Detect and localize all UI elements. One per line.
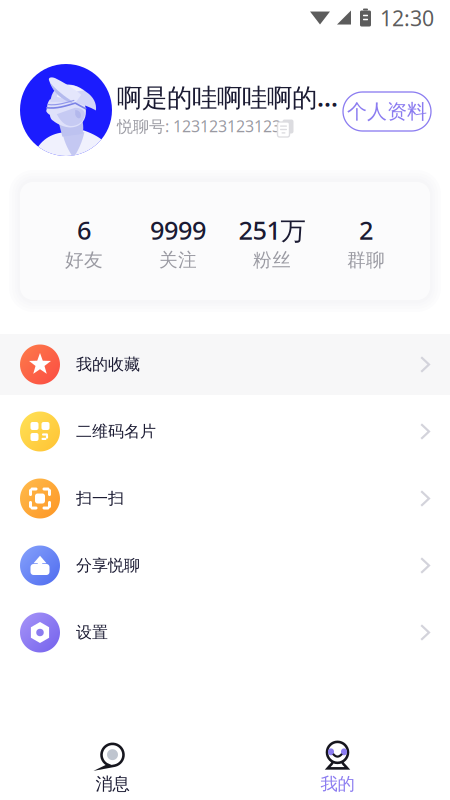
- staticText: 我的: [320, 773, 354, 795]
- button[interactable]: 设置: [0, 599, 450, 666]
- button[interactable]: 扫一扫: [0, 465, 450, 532]
- staticText: 啊是的哇啊哇啊的…: [117, 80, 338, 114]
- button[interactable]: 二维码名片: [0, 398, 450, 465]
- staticText: 251万: [238, 213, 305, 247]
- staticText: 关注: [159, 248, 197, 271]
- staticText: 我的收藏: [76, 355, 140, 374]
- staticText: 好友: [65, 248, 103, 271]
- staticText: 2: [359, 213, 373, 247]
- staticText: 群聊: [347, 248, 385, 271]
- staticText: 个人资料: [347, 99, 427, 124]
- staticText: 消息: [95, 773, 129, 795]
- staticText: 6: [77, 213, 91, 247]
- staticText: 12:30: [380, 4, 434, 32]
- staticText: 粉丝: [253, 248, 291, 271]
- button[interactable]: 分享悦聊: [0, 532, 450, 599]
- staticText: 9999: [150, 213, 206, 247]
- button[interactable]: 我的收藏: [0, 331, 450, 398]
- button[interactable]: 我的: [225, 737, 450, 800]
- staticText: 分享悦聊: [76, 556, 140, 575]
- staticText: 扫一扫: [76, 489, 124, 508]
- button[interactable]: 消息: [0, 737, 225, 800]
- staticText: 二维码名片: [76, 422, 156, 441]
- button[interactable]: 个人资料: [343, 92, 431, 131]
- staticText: 设置: [76, 623, 108, 642]
- staticText: 悦聊号: 123123123123: [117, 115, 281, 137]
